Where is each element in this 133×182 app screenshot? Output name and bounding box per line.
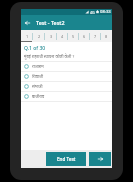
staticText: 1: [26, 34, 29, 39]
button[interactable]: 1: [21, 30, 33, 42]
staticText: मुंबई शहराची स्थापना कोणी केली ?: [24, 54, 75, 59]
staticText: राजाराम: [32, 64, 44, 69]
staticText: 08:33: [100, 9, 111, 15]
button[interactable]: 7: [90, 30, 101, 42]
staticText: Test - Test2: [36, 19, 65, 26]
button[interactable]: 5: [68, 30, 79, 42]
staticText: 6: [83, 34, 86, 39]
staticText: संभाजी: [32, 84, 43, 89]
staticText: Q.1 of 30: [24, 45, 46, 52]
button[interactable]: राजाराम: [21, 62, 112, 71]
staticText: शिवाजी: [32, 74, 44, 79]
staticText: 8: [105, 34, 108, 39]
staticText: 3: [50, 34, 53, 39]
staticText: 2: [38, 34, 41, 39]
button[interactable]: 6: [79, 30, 90, 42]
button[interactable]: End Test: [46, 152, 86, 166]
button[interactable]: Back: [21, 15, 34, 30]
button[interactable]: 4: [57, 30, 68, 42]
staticText: 4: [61, 34, 64, 39]
button[interactable]: संभाजी: [21, 82, 112, 91]
button[interactable]: बाजीराव: [21, 92, 112, 101]
button[interactable]: Next question: [89, 152, 111, 166]
button[interactable]: 2: [33, 30, 45, 42]
staticText: 4G: [90, 10, 95, 15]
button[interactable]: 3: [45, 30, 57, 42]
staticText: 5: [72, 34, 75, 39]
staticText: 7: [94, 34, 97, 39]
staticText: बाजीराव: [32, 94, 45, 99]
staticText: End Test: [57, 156, 76, 162]
button[interactable]: शिवाजी: [21, 72, 112, 81]
button[interactable]: 8: [101, 30, 112, 42]
